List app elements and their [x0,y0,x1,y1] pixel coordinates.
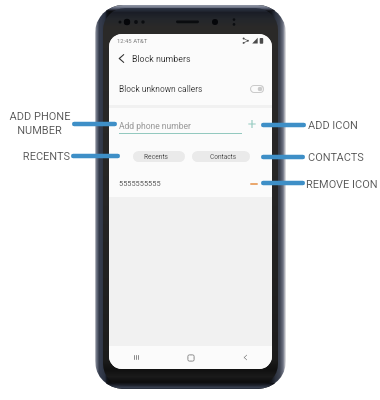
button[interactable]: Remove number [246,176,262,192]
button[interactable]: Contacts [192,151,250,162]
button[interactable]: Recents [133,151,185,162]
staticText: REMOVE ICON [306,178,380,191]
staticText: Contacts [210,153,237,161]
button[interactable]: Block unknown callers [109,79,272,98]
button[interactable]: Recent apps [109,346,164,369]
button[interactable]: Back [218,346,272,369]
staticText: Block unknown callers [119,84,250,94]
staticText: Recents [144,153,169,161]
staticText: RECENTS [1,150,70,163]
staticText: 5555555555 [119,179,161,188]
staticText: CONTACTS [308,151,380,164]
staticText: Block numbers [132,54,191,64]
staticText: 12:45 AT&T [117,38,148,45]
staticText: NUMBER [5,124,74,137]
button[interactable]: Home [164,346,218,369]
staticText: ADD PHONE [5,110,75,123]
button[interactable]: 5555555555 [109,173,272,193]
button[interactable]: Add phone number [244,116,260,132]
button[interactable]: Back [113,50,130,67]
staticText: ADD ICON [308,119,380,132]
staticText: Add phone number [119,121,191,131]
